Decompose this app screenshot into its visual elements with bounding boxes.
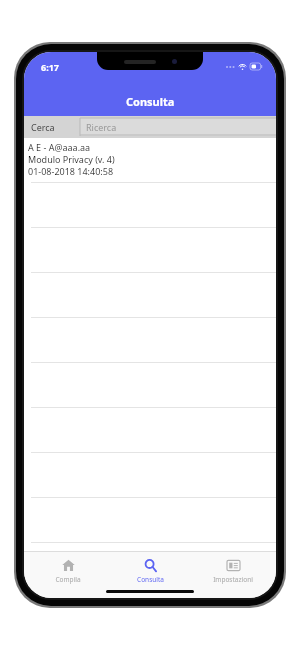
staticText: Consulta [137,575,164,584]
staticText: Modulo Privacy (v. 4) [28,153,115,165]
button[interactable]: Consulta [111,557,189,584]
button[interactable]: Compila [29,557,107,584]
staticText: Impostazioni [213,575,253,584]
other: Consulta [144,559,157,572]
button[interactable] [24,273,276,318]
button[interactable] [24,408,276,453]
other: Impostazioni [227,559,240,572]
button[interactable]: Impostazioni [194,557,272,584]
button[interactable] [24,363,276,408]
staticText: Consulta [126,94,175,109]
button[interactable] [24,183,276,228]
button[interactable]: Cerca [24,116,80,138]
button[interactable]: A E - A@aaa.aa [24,138,276,183]
button[interactable] [24,228,276,273]
other: Compila [62,559,75,572]
staticText: Ricerca [86,121,117,133]
button[interactable] [24,498,276,543]
staticText: 6:17 [41,61,59,73]
button[interactable]: Ricerca [80,118,276,136]
staticText: 01-08-2018 14:40:58 [28,165,114,177]
staticText: A E - A@aaa.aa [28,141,91,153]
staticText: Compila [55,575,81,584]
staticText: Cerca [31,121,55,133]
button[interactable] [24,453,276,498]
button[interactable] [24,318,276,363]
